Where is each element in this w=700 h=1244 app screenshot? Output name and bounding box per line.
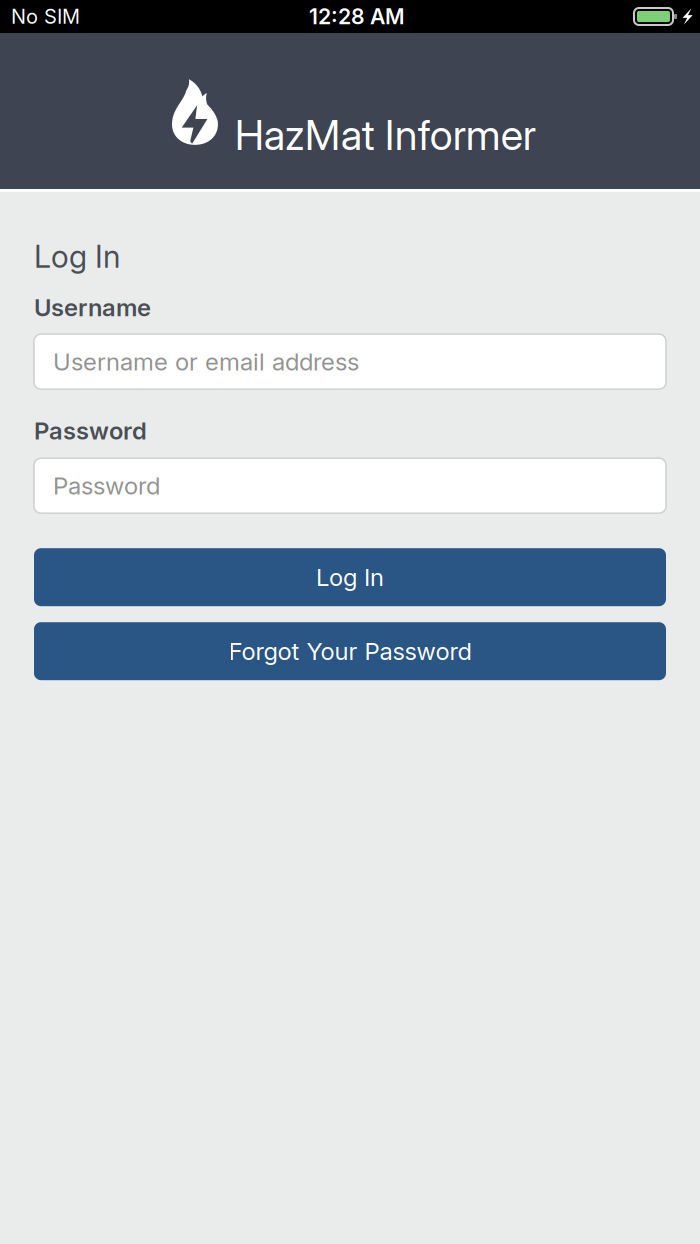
button[interactable]: Forgot Your Password (34, 622, 666, 680)
staticText: Forgot Your Password (228, 637, 471, 666)
button[interactable]: Password (34, 458, 666, 513)
staticText: Username or email address (53, 347, 359, 376)
staticText: Password (53, 471, 160, 500)
staticText: HazMat Informer (235, 110, 536, 160)
staticText: Username (34, 293, 151, 322)
button[interactable]: Username or email address (34, 334, 666, 389)
staticText: No SIM (11, 4, 80, 29)
button[interactable]: Log In (34, 548, 666, 606)
staticText: Password (34, 416, 147, 445)
staticText: 12:28 AM (309, 4, 405, 29)
staticText: Log In (316, 563, 384, 592)
staticText: Log In (34, 238, 120, 275)
